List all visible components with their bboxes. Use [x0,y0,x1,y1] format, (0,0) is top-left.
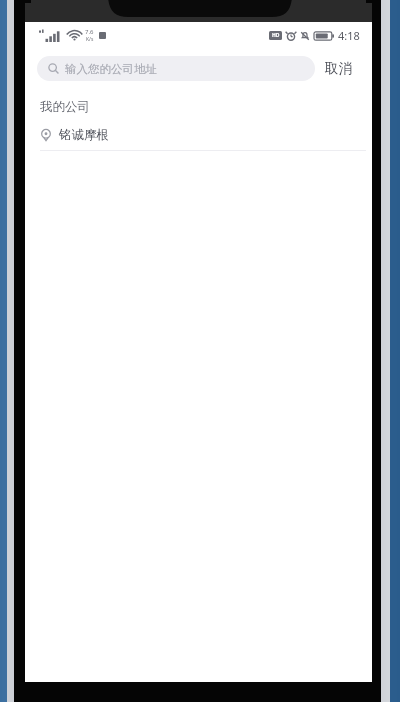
staticText: K/s [86,36,94,43]
other: Location [40,129,52,141]
staticText: HD [272,32,280,39]
staticText: 铭诚摩根 [59,127,109,143]
staticText: 4:18 [338,28,360,43]
button[interactable]: Location [25,120,372,150]
staticText: 取消 [325,60,352,77]
staticText: 我的公司 [40,99,90,115]
staticText: 7.6 [85,28,94,36]
button[interactable]: 取消 [315,54,362,83]
button[interactable]: 输入您的公司地址 [37,56,315,81]
staticText: 输入您的公司地址 [65,62,157,76]
